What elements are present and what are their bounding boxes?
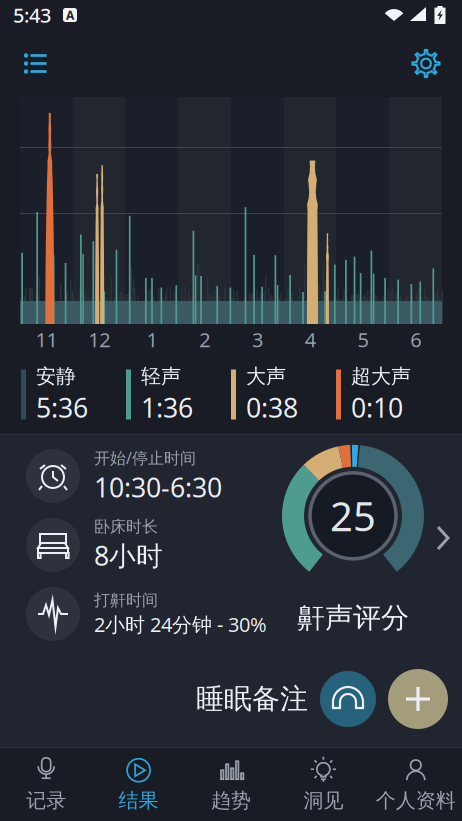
staticText: 打鼾时间 [94,590,158,610]
staticText: 安静 [36,364,76,389]
staticText: 洞见 [303,788,343,813]
staticText: 5:36 [36,390,88,425]
staticText: A [66,7,74,23]
button[interactable]: Next [434,447,462,551]
staticText: 轻声 [141,364,181,389]
staticText: 卧床时长 [94,517,158,537]
button[interactable]: 结果 [92,750,185,819]
staticText: 10:30-6:30 [94,469,222,505]
button[interactable]: Mouth guard [320,671,376,727]
staticText: 趋势 [211,788,251,813]
staticText: 记录 [26,788,66,813]
staticText: 开始/停止时间 [94,447,196,468]
button[interactable]: Settings [408,45,444,81]
staticText: 8小时 [94,538,163,573]
staticText: 2 [199,326,210,353]
staticText: 超大声 [351,364,411,389]
button[interactable]: Sleep records [18,45,54,81]
staticText: 6 [410,326,421,353]
staticText: 个人资料 [376,788,456,813]
staticText: 2小时 24分钟 - 30% [94,611,267,638]
staticText: 结果 [119,788,159,813]
button[interactable]: 记录 [0,750,92,819]
button[interactable]: 个人资料 [370,750,462,819]
button[interactable]: Add note [388,669,448,729]
staticText: 5:43 [13,2,51,28]
staticText: 1:36 [141,390,193,425]
staticText: 0:10 [351,390,403,425]
staticText: 25 [330,489,376,542]
button[interactable]: 25 [280,447,426,647]
button[interactable]: 洞见 [277,750,370,819]
staticText: 睡眠备注 [196,682,308,716]
staticText: 3 [252,326,263,353]
staticText: 5 [357,326,368,353]
staticText: 12 [88,326,110,353]
button[interactable]: 趋势 [185,750,277,819]
staticText: 大声 [246,364,286,389]
staticText: 0:38 [246,390,298,425]
staticText: 1 [146,326,157,353]
staticText: 4 [305,326,316,353]
staticText: 11 [35,326,57,353]
staticText: 鼾声评分 [297,601,409,635]
